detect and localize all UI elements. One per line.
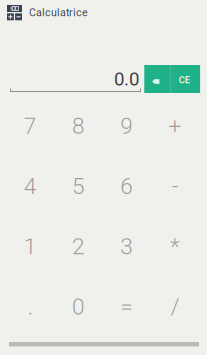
staticText: 8: [72, 113, 85, 139]
button[interactable]: *: [151, 216, 199, 277]
staticText: Calculatrice: [29, 6, 88, 19]
button[interactable]: CE: [171, 65, 200, 93]
staticText: 9: [120, 113, 133, 139]
button[interactable]: +: [151, 96, 199, 156]
staticText: *: [170, 233, 180, 260]
staticText: 7: [24, 113, 37, 139]
button[interactable]: 2: [54, 216, 102, 277]
staticText: -: [172, 173, 178, 200]
button[interactable]: 8: [54, 96, 102, 156]
staticText: 3: [120, 233, 133, 260]
staticText: 6: [120, 173, 133, 200]
button[interactable]: /: [151, 277, 199, 337]
staticText: 0.0: [114, 68, 139, 90]
staticText: 4: [24, 173, 37, 200]
button[interactable]: Backspace: [144, 65, 170, 93]
staticText: 1: [24, 233, 37, 260]
button[interactable]: 1: [6, 216, 54, 277]
button[interactable]: 6: [102, 156, 151, 216]
staticText: 0: [72, 294, 85, 320]
button[interactable]: =: [102, 277, 151, 337]
button[interactable]: 7: [6, 96, 54, 156]
staticText: 2: [72, 233, 85, 260]
staticText: 5: [72, 173, 85, 200]
button[interactable]: 3: [102, 216, 151, 277]
button[interactable]: 9: [102, 96, 151, 156]
button[interactable]: 4: [6, 156, 54, 216]
staticText: +: [168, 113, 181, 139]
button[interactable]: -: [151, 156, 199, 216]
staticText: =: [120, 294, 133, 320]
staticText: CE: [179, 74, 190, 85]
staticText: .: [28, 294, 33, 320]
button[interactable]: 0: [54, 277, 102, 337]
button[interactable]: 5: [54, 156, 102, 216]
staticText: /: [170, 294, 179, 320]
